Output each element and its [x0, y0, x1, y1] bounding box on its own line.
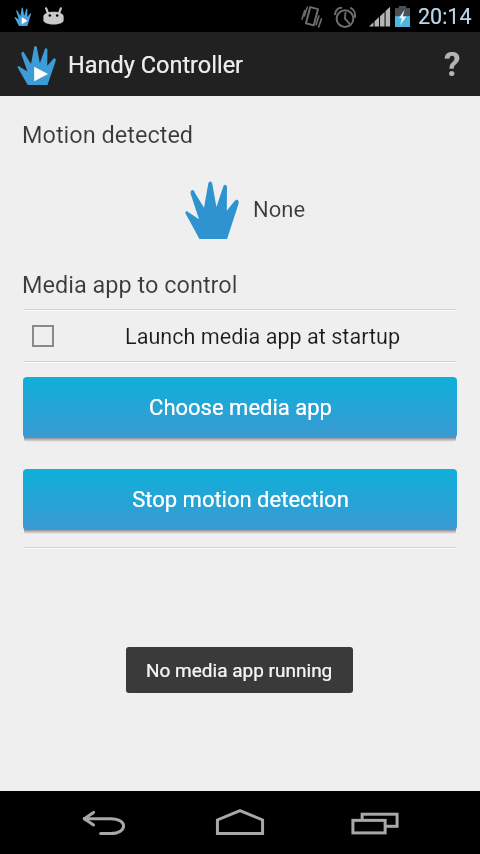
- staticText: Launch media app at startup: [125, 324, 401, 349]
- button[interactable]: Recent apps: [335, 792, 415, 854]
- staticText: ?: [444, 45, 461, 84]
- button[interactable]: Stop motion detection: [23, 469, 457, 530]
- staticText: 20:14: [418, 4, 472, 29]
- button[interactable]: Back: [65, 792, 145, 854]
- staticText: Motion detected: [22, 121, 194, 149]
- button[interactable]: Help: [424, 36, 480, 92]
- staticText: None: [253, 197, 306, 223]
- staticText: Media app to control: [22, 271, 238, 299]
- staticText: No media app running: [146, 659, 333, 681]
- button[interactable]: Launch media app at startup: [0, 311, 480, 361]
- staticText: Stop motion detection: [132, 487, 349, 513]
- button[interactable]: Home: [200, 791, 280, 853]
- button[interactable]: Choose media app: [23, 377, 457, 438]
- staticText: Handy Controller: [68, 51, 244, 79]
- staticText: Choose media app: [149, 395, 332, 421]
